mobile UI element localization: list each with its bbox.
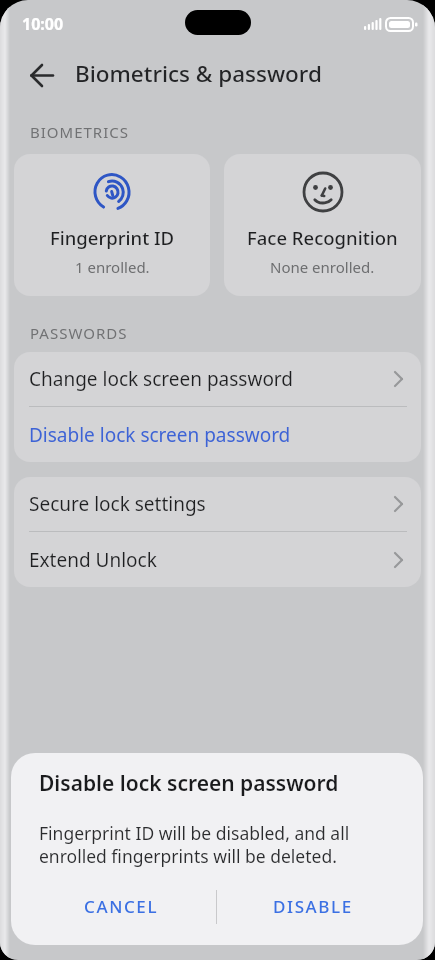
button[interactable]: Face Recognition <box>224 154 421 296</box>
staticText: Disable lock screen password <box>29 422 403 448</box>
button[interactable]: Extend Unlock <box>14 532 421 587</box>
button[interactable]: Disable lock screen password <box>14 407 421 462</box>
staticText: Secure lock settings <box>29 491 394 517</box>
button[interactable]: DISABLE <box>217 868 408 945</box>
staticText: Fingerprint ID will be disabled, and all… <box>39 821 350 868</box>
staticText: PASSWORDS <box>30 323 128 343</box>
staticText: CANCEL <box>84 895 159 918</box>
staticText: Fingerprint ID <box>50 225 175 250</box>
staticText: Face Recognition <box>247 225 398 250</box>
staticText: Disable lock screen password <box>39 769 339 798</box>
button[interactable]: Biometrics & password <box>0 45 435 105</box>
staticText: 10:00 <box>22 13 64 35</box>
staticText: Biometrics & password <box>75 58 322 89</box>
staticText: None enrolled. <box>270 257 375 277</box>
staticText: Extend Unlock <box>29 547 394 573</box>
staticText: Change lock screen password <box>29 366 394 392</box>
button[interactable]: Fingerprint ID <box>14 154 210 296</box>
staticText: BIOMETRICS <box>30 122 129 142</box>
staticText: DISABLE <box>273 895 353 918</box>
button[interactable]: Change lock screen password <box>14 352 421 406</box>
button[interactable]: CANCEL <box>26 868 216 945</box>
button[interactable]: Secure lock settings <box>14 477 421 531</box>
staticText: 1 enrolled. <box>75 257 150 277</box>
